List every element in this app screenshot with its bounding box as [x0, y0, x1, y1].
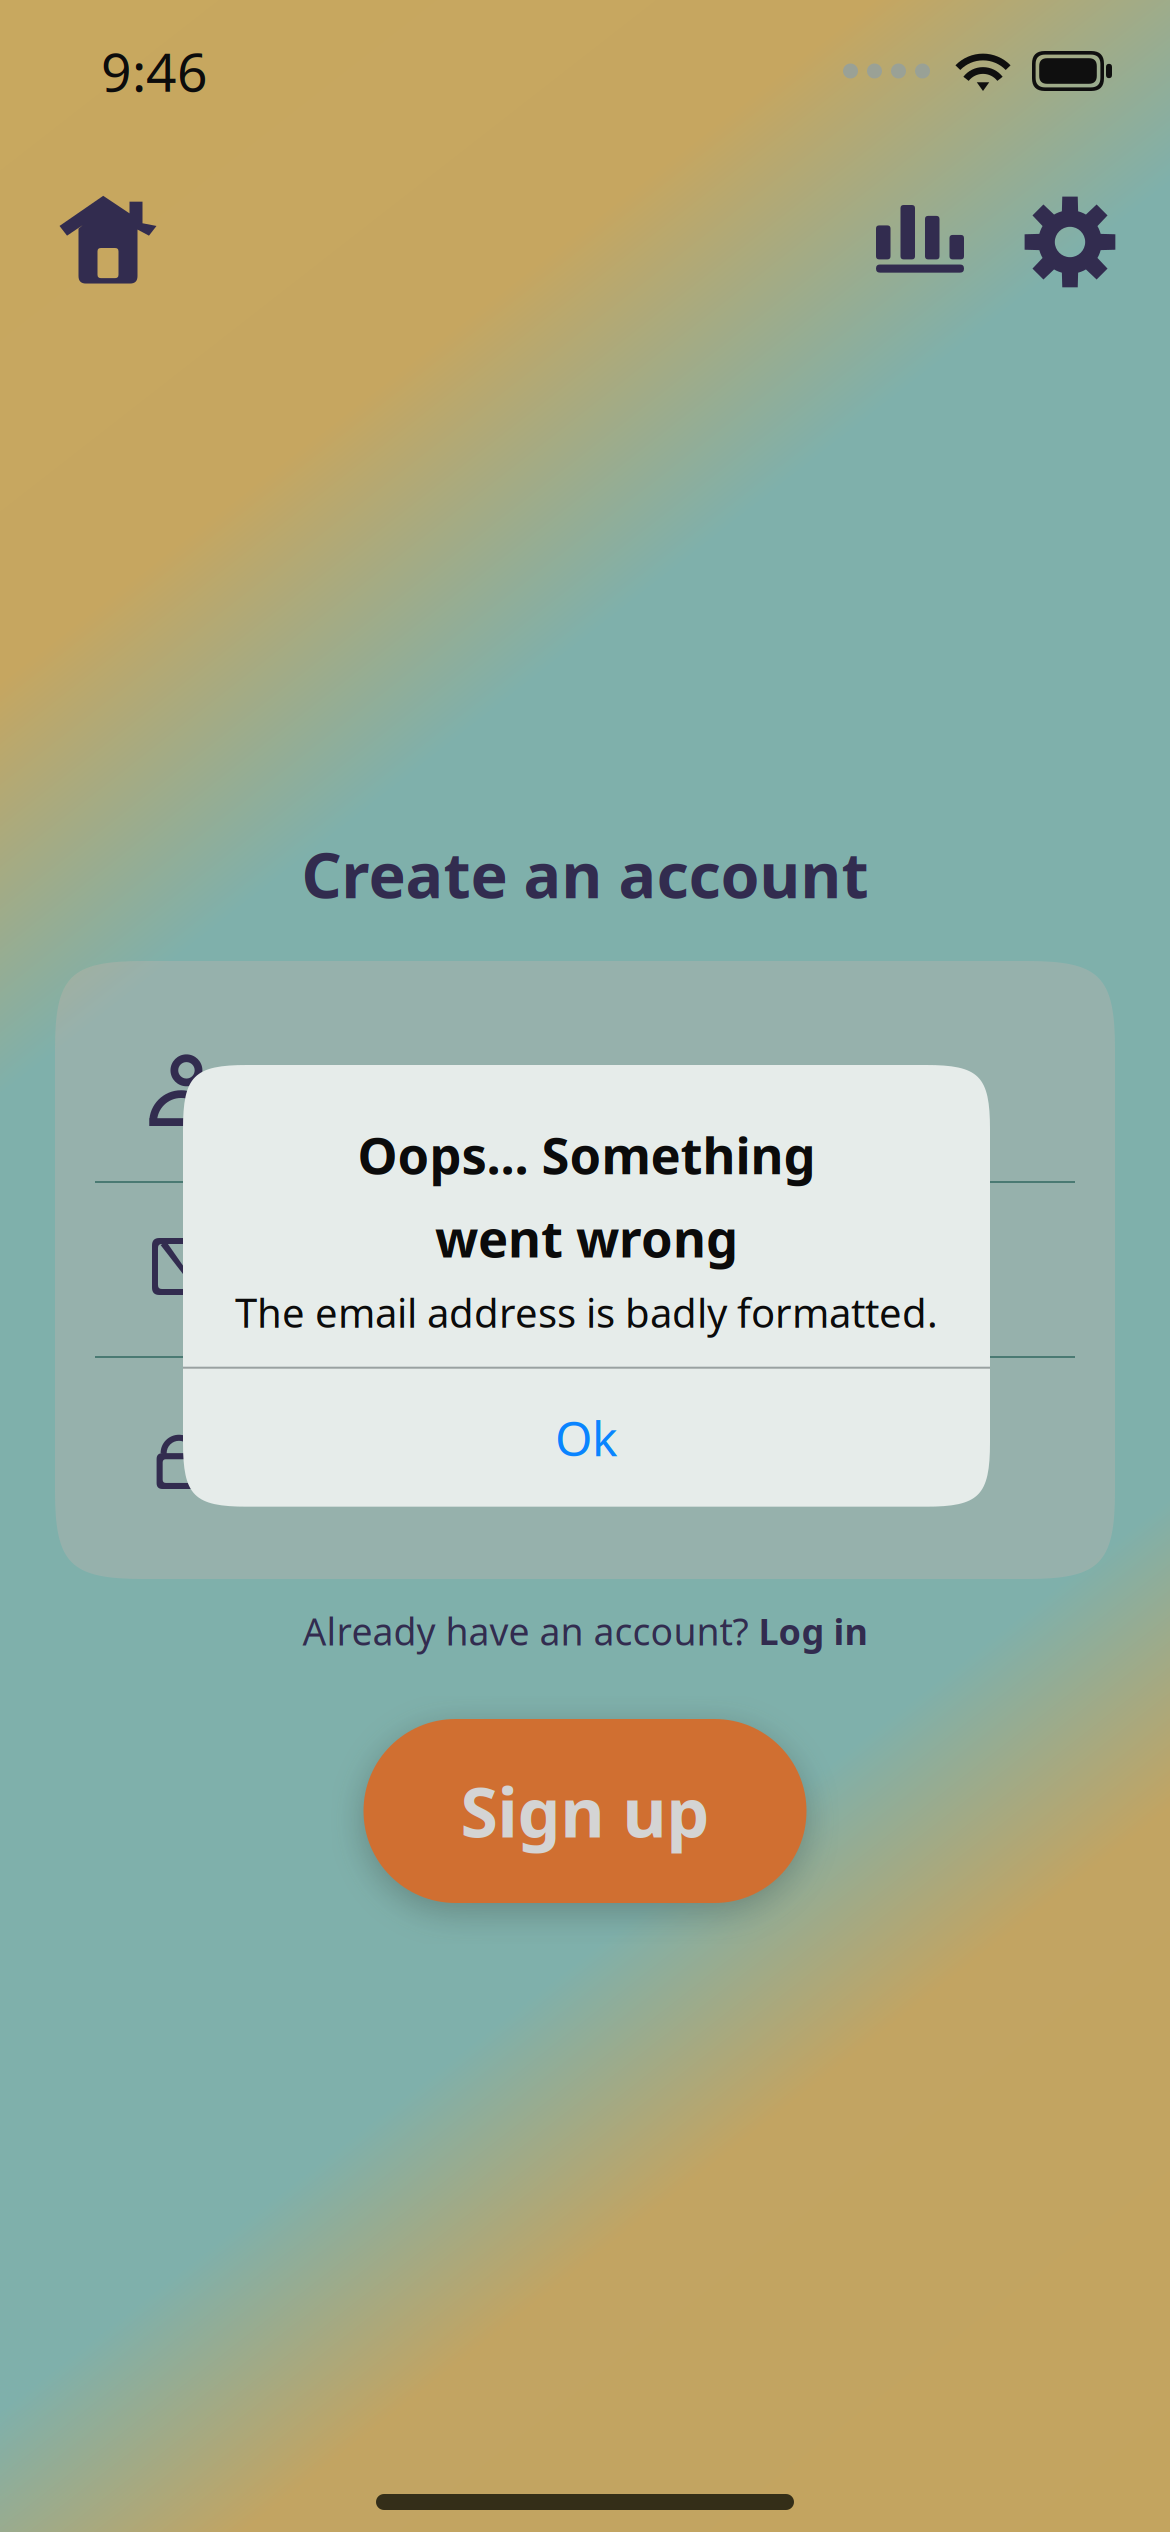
staticText: Sign up [460, 1766, 709, 1856]
button[interactable]: Statistics [865, 183, 975, 295]
button[interactable]: Already have an account? [302, 1595, 867, 1667]
staticText: 9:46 [101, 36, 208, 106]
button[interactable]: Sign up [363, 1719, 806, 1903]
staticText: The email address is badly formatted. [235, 1286, 938, 1339]
staticText: Log in [758, 1607, 867, 1655]
staticText: Already have an account? [302, 1606, 758, 1656]
button[interactable]: Home [46, 183, 170, 295]
button[interactable]: Ok [183, 1369, 990, 1507]
staticText: Oops... Something [357, 1121, 815, 1188]
button[interactable]: Settings [1013, 183, 1127, 295]
staticText: Ok [555, 1406, 618, 1469]
staticText: went wrong [435, 1204, 738, 1272]
staticText: Create an account [301, 832, 868, 916]
